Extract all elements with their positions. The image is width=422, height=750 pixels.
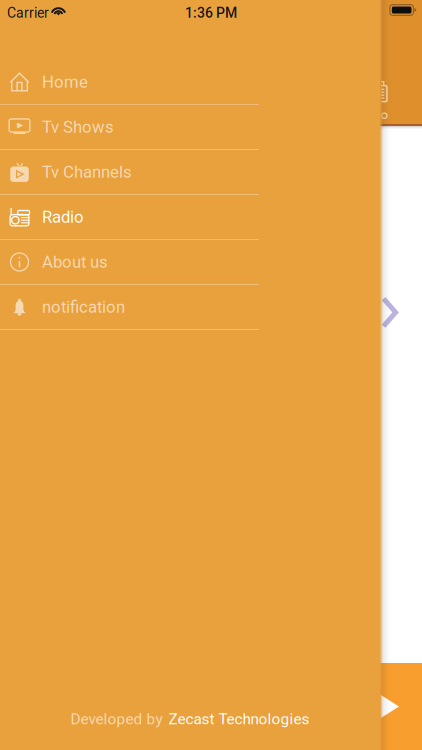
button[interactable]: Radio [0, 195, 259, 240]
staticText: About us [42, 252, 108, 272]
button[interactable]: Tv Shows [0, 105, 259, 150]
button[interactable]: Home [0, 60, 259, 105]
staticText: 1:36 PM [185, 5, 237, 21]
staticText: notification [42, 297, 125, 317]
button[interactable]: notification [0, 285, 259, 330]
staticText: Carrier [7, 5, 49, 21]
staticText: Radio [42, 207, 84, 227]
button[interactable]: Tv Channels [0, 150, 259, 195]
button[interactable]: About us [0, 240, 259, 285]
staticText: Home [42, 72, 88, 92]
staticText: Tv Channels [42, 162, 132, 182]
staticText: Zecast Technologies [168, 710, 309, 728]
staticText: Developed by [70, 710, 162, 728]
staticText: Tv Shows [42, 117, 114, 137]
